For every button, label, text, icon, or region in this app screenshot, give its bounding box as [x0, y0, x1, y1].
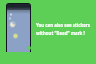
staticText: You can also see stickers [36, 22, 90, 28]
staticText: without "Read" mark ! [36, 30, 85, 36]
button[interactable]: New chat [27, 46, 31, 50]
